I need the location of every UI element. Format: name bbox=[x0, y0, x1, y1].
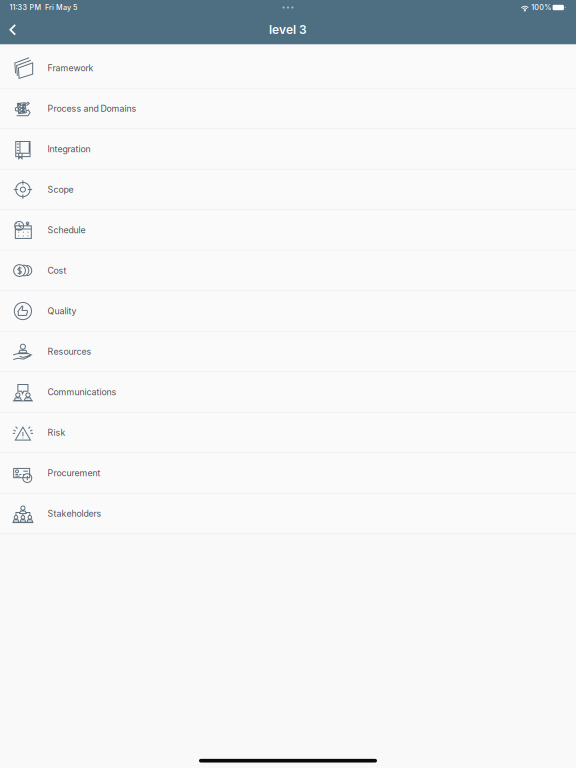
staticText: Fri May 5 bbox=[45, 3, 77, 12]
staticText: level 3 bbox=[269, 22, 307, 37]
button[interactable]: Schedule bbox=[0, 210, 576, 251]
staticText: 11:33 PM bbox=[9, 3, 41, 12]
staticText: Quality bbox=[47, 306, 76, 316]
staticText: Schedule bbox=[47, 225, 85, 235]
button[interactable]: Back bbox=[0, 19, 26, 40]
button[interactable]: Framework bbox=[0, 48, 576, 89]
button[interactable]: Cost bbox=[0, 251, 576, 291]
staticText: Scope bbox=[47, 184, 73, 195]
staticText: Resources bbox=[47, 346, 91, 357]
staticText: Communications bbox=[47, 387, 116, 397]
staticText: Stakeholders bbox=[47, 508, 101, 519]
staticText: Integration bbox=[47, 144, 90, 154]
button[interactable]: Procurement bbox=[0, 453, 576, 494]
button[interactable]: Integration bbox=[0, 129, 576, 170]
staticText: Framework bbox=[47, 63, 93, 73]
staticText: Procurement bbox=[47, 468, 100, 478]
button[interactable]: Process and Domains bbox=[0, 89, 576, 129]
button[interactable]: Resources bbox=[0, 332, 576, 372]
button[interactable]: Risk bbox=[0, 413, 576, 453]
button[interactable]: Quality bbox=[0, 291, 576, 332]
staticText: 100% bbox=[531, 3, 551, 12]
staticText: Risk bbox=[47, 427, 65, 438]
staticText: Process and Domains bbox=[47, 103, 136, 114]
staticText: Cost bbox=[47, 265, 66, 276]
button[interactable]: Communications bbox=[0, 372, 576, 413]
button[interactable]: Scope bbox=[0, 170, 576, 210]
button[interactable]: Stakeholders bbox=[0, 494, 576, 534]
